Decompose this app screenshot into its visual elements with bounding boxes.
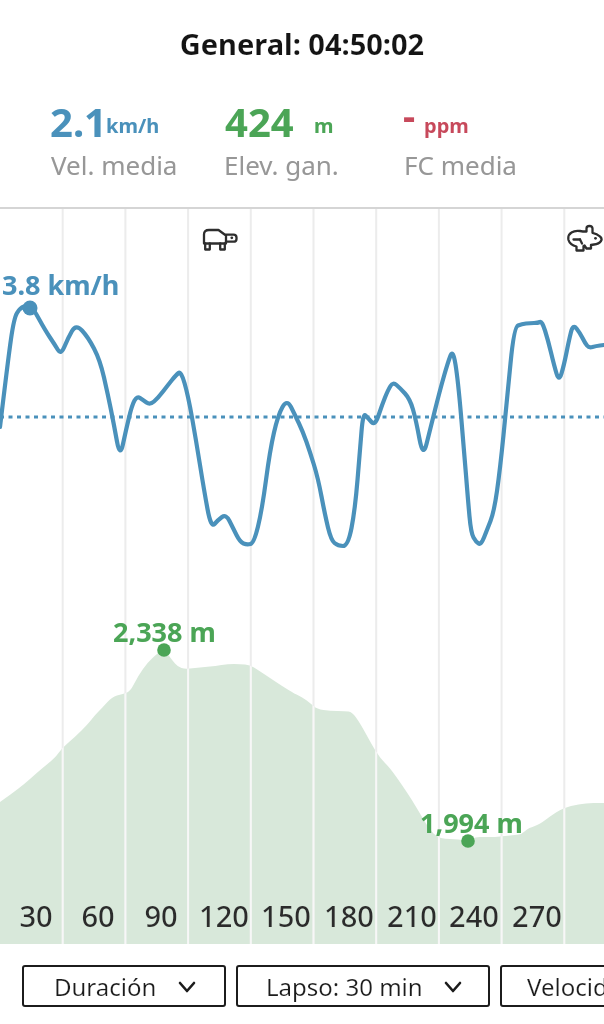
staticText: Velocidad xyxy=(527,970,604,1003)
staticText: 3.8 km/h xyxy=(2,266,120,303)
staticText: General: 04:50:02 xyxy=(0,24,604,63)
staticText: 120 xyxy=(193,896,255,935)
staticText: - xyxy=(403,89,416,141)
button[interactable]: Lapso: 30 min xyxy=(236,965,490,1007)
staticText: FC media xyxy=(404,147,517,182)
staticText: 2.1 xyxy=(50,94,107,148)
staticText: 270 xyxy=(506,896,568,935)
staticText: Lapso: 30 min xyxy=(266,970,423,1003)
staticText: km/h xyxy=(106,112,160,139)
staticText: 1,994 m xyxy=(420,804,523,841)
staticText: Vel. media xyxy=(51,147,178,182)
button[interactable]: Velocidad xyxy=(500,965,604,1007)
staticText: 240 xyxy=(443,896,505,935)
staticText: Elev. gan. xyxy=(224,147,339,182)
staticText: 150 xyxy=(255,896,317,935)
staticText: 424 xyxy=(225,94,294,148)
staticText: 90 xyxy=(130,896,192,935)
button[interactable]: Duración xyxy=(22,965,226,1007)
staticText: Duración xyxy=(54,970,157,1003)
staticText: m xyxy=(314,112,334,139)
staticText: 180 xyxy=(318,896,380,935)
staticText: 60 xyxy=(67,896,129,935)
staticText: 2,338 m xyxy=(113,613,216,650)
staticText: 30 xyxy=(5,896,67,935)
staticText: 210 xyxy=(381,896,443,935)
staticText: ppm xyxy=(424,112,469,139)
